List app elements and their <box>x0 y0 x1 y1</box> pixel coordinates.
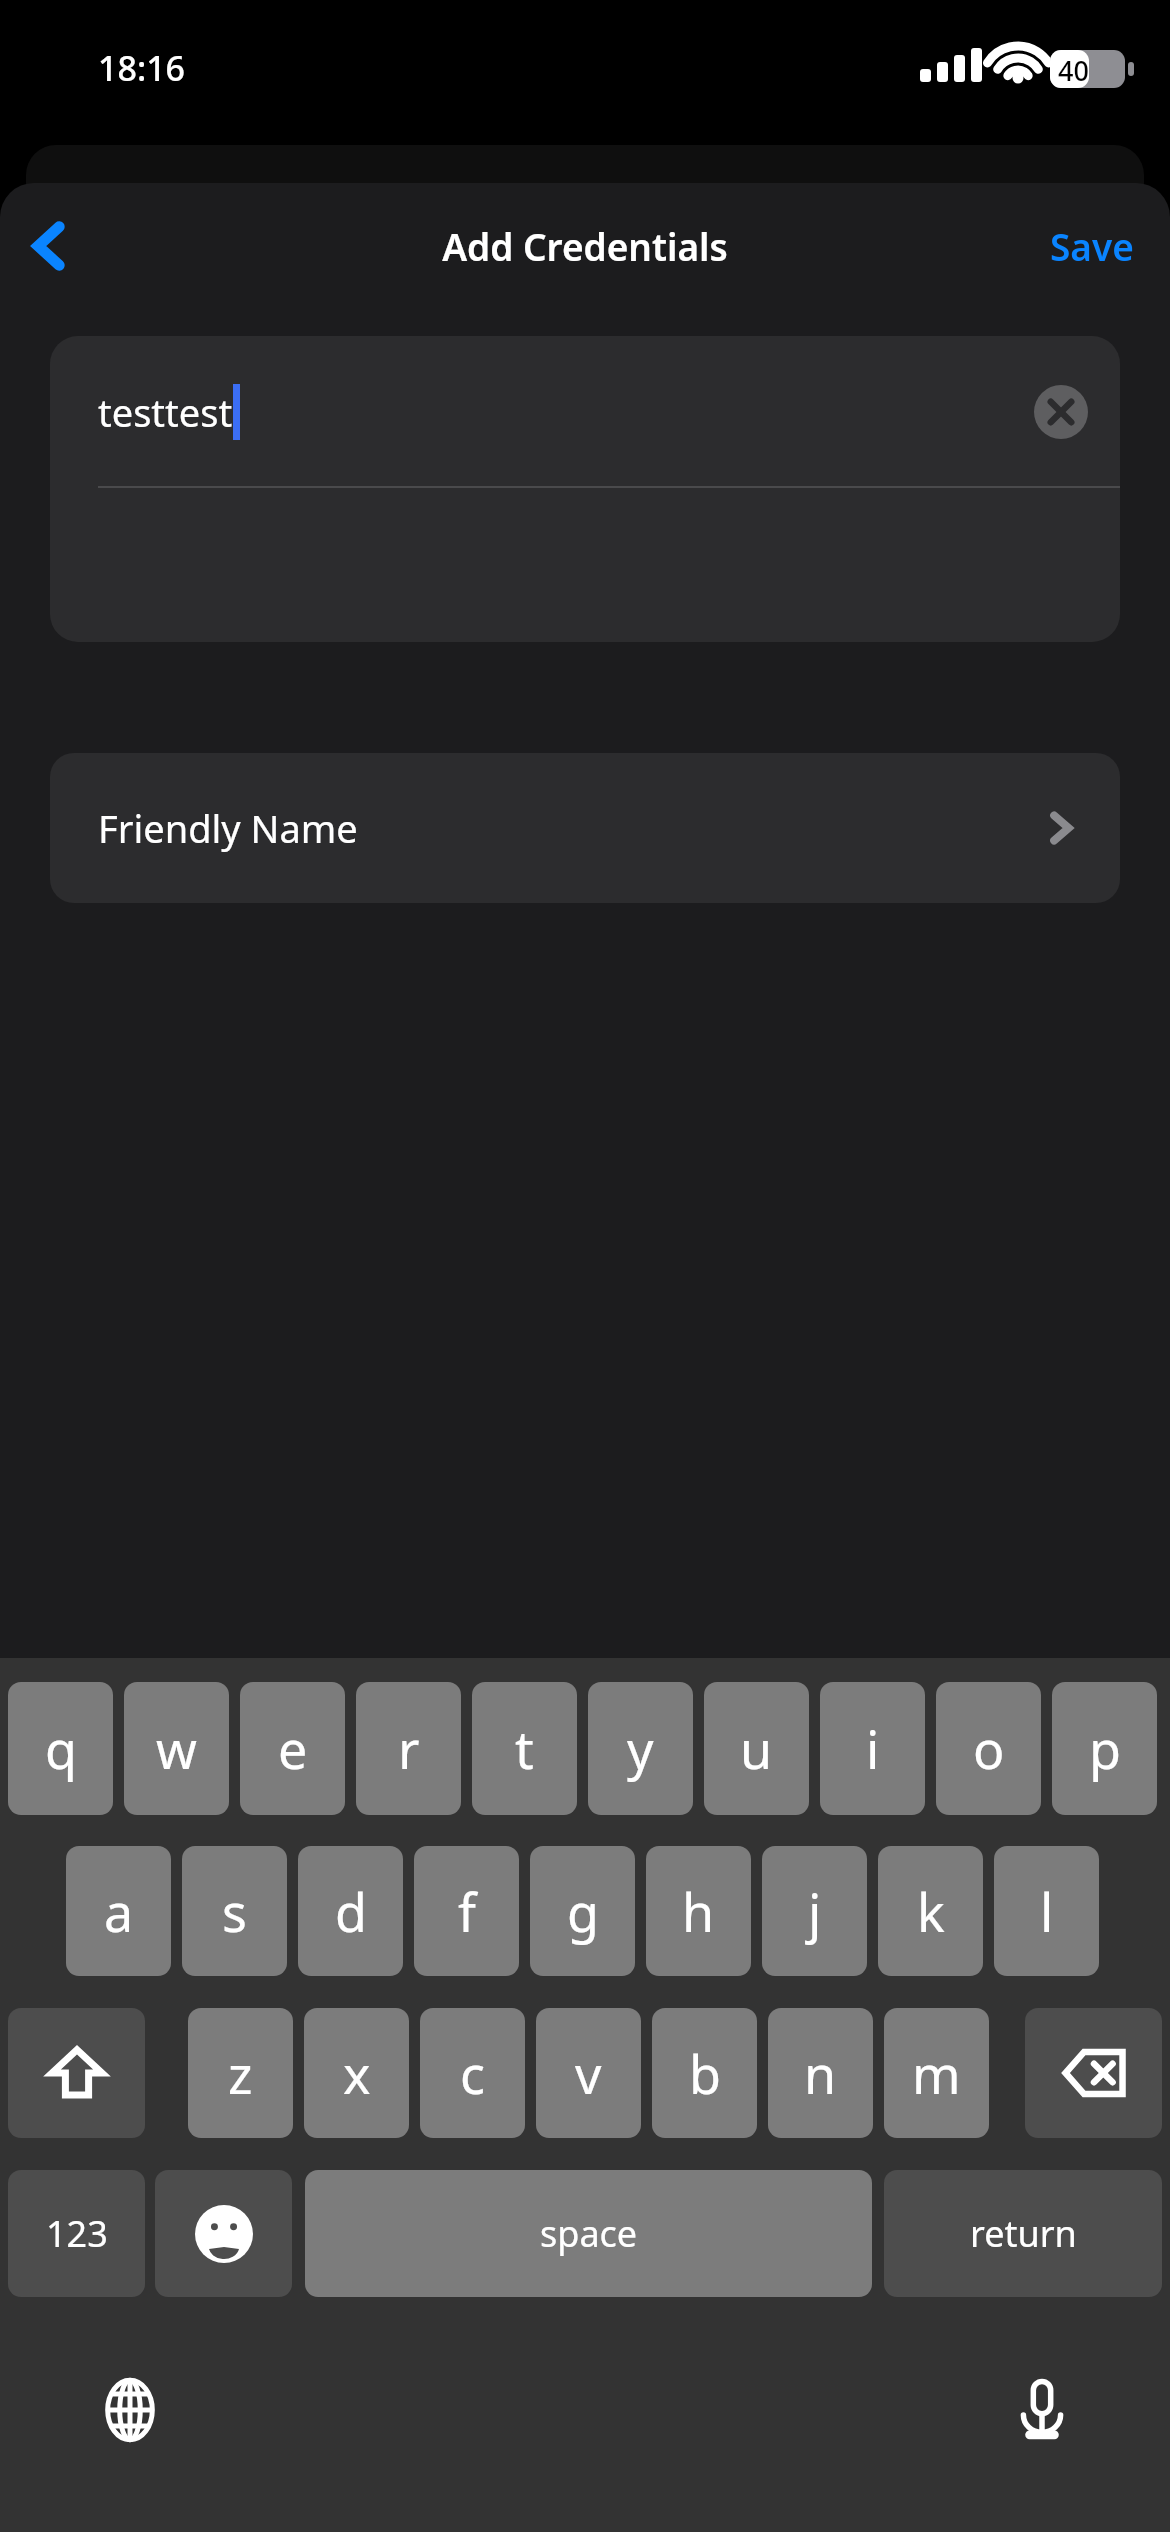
staticText: i <box>866 1713 880 1784</box>
button[interactable]: r <box>356 1682 461 1815</box>
button[interactable]: h <box>646 1846 751 1976</box>
button[interactable]: Shift <box>8 2008 145 2138</box>
staticText: j <box>808 1876 822 1947</box>
button[interactable]: y <box>588 1682 693 1815</box>
staticText: return <box>970 2209 1077 2258</box>
staticText: d <box>335 1876 367 1947</box>
staticText: 40 <box>1058 52 1089 89</box>
button[interactable]: Save <box>1036 205 1148 287</box>
staticText: f <box>458 1876 476 1947</box>
button[interactable]: j <box>762 1846 867 1976</box>
staticText: Add Credentials <box>442 221 728 271</box>
button[interactable]: Friendly Name <box>50 753 1120 903</box>
button[interactable]: g <box>530 1846 635 1976</box>
staticText: Save <box>1050 221 1134 271</box>
button[interactable]: b <box>652 2008 757 2138</box>
button[interactable]: n <box>768 2008 873 2138</box>
button[interactable]: d <box>298 1846 403 1976</box>
staticText: v <box>575 2038 602 2109</box>
button[interactable]: Change keyboard language <box>88 2368 172 2452</box>
staticText: m <box>912 2038 961 2109</box>
staticText: 18:16 <box>98 45 186 91</box>
staticText: o <box>973 1713 1005 1784</box>
button[interactable]: Dictation <box>1000 2368 1084 2452</box>
button[interactable]: s <box>182 1846 287 1976</box>
button[interactable]: 123 <box>8 2170 145 2297</box>
button[interactable]: Back <box>8 202 96 290</box>
staticText: Friendly Name <box>98 802 358 854</box>
staticText: e <box>278 1713 308 1784</box>
button[interactable]: a <box>66 1846 171 1976</box>
button[interactable]: c <box>420 2008 525 2138</box>
staticText: y <box>627 1713 654 1784</box>
button[interactable]: o <box>936 1682 1041 1815</box>
button[interactable]: q <box>8 1682 113 1815</box>
staticText: g <box>567 1876 599 1947</box>
button[interactable]: k <box>878 1846 983 1976</box>
button[interactable]: z <box>188 2008 293 2138</box>
button[interactable]: Backspace <box>1025 2008 1162 2138</box>
staticText: t <box>515 1713 534 1784</box>
button[interactable]: Clear text <box>1030 381 1092 443</box>
button[interactable]: i <box>820 1682 925 1815</box>
button[interactable]: u <box>704 1682 809 1815</box>
staticText: 123 <box>46 2209 108 2258</box>
button[interactable]: testtest <box>50 336 1120 488</box>
button[interactable]: e <box>240 1682 345 1815</box>
staticText: x <box>343 2038 371 2109</box>
staticText: testtest <box>98 386 233 438</box>
button[interactable]: f <box>414 1846 519 1976</box>
staticText: h <box>682 1876 715 1947</box>
staticText: w <box>156 1713 197 1784</box>
staticText: space <box>540 2209 638 2258</box>
staticText: a <box>104 1876 134 1947</box>
staticText: p <box>1089 1713 1121 1784</box>
staticText: u <box>740 1713 773 1784</box>
staticText: c <box>460 2038 485 2109</box>
staticText: n <box>804 2038 837 2109</box>
button[interactable]: return <box>884 2170 1162 2297</box>
button[interactable]: l <box>994 1846 1099 1976</box>
button[interactable]: t <box>472 1682 577 1815</box>
button[interactable]: p <box>1052 1682 1157 1815</box>
button[interactable]: w <box>124 1682 229 1815</box>
button[interactable]: m <box>884 2008 989 2138</box>
staticText: b <box>689 2038 721 2109</box>
staticText: r <box>398 1713 420 1784</box>
staticText: z <box>228 2038 253 2109</box>
staticText: k <box>917 1876 945 1947</box>
staticText: s <box>222 1876 247 1947</box>
button[interactable]: v <box>536 2008 641 2138</box>
staticText: q <box>45 1713 77 1784</box>
button[interactable]: Emoji <box>155 2170 292 2297</box>
button[interactable]: x <box>304 2008 409 2138</box>
staticText: l <box>1040 1876 1054 1947</box>
button[interactable]: space <box>305 2170 872 2297</box>
